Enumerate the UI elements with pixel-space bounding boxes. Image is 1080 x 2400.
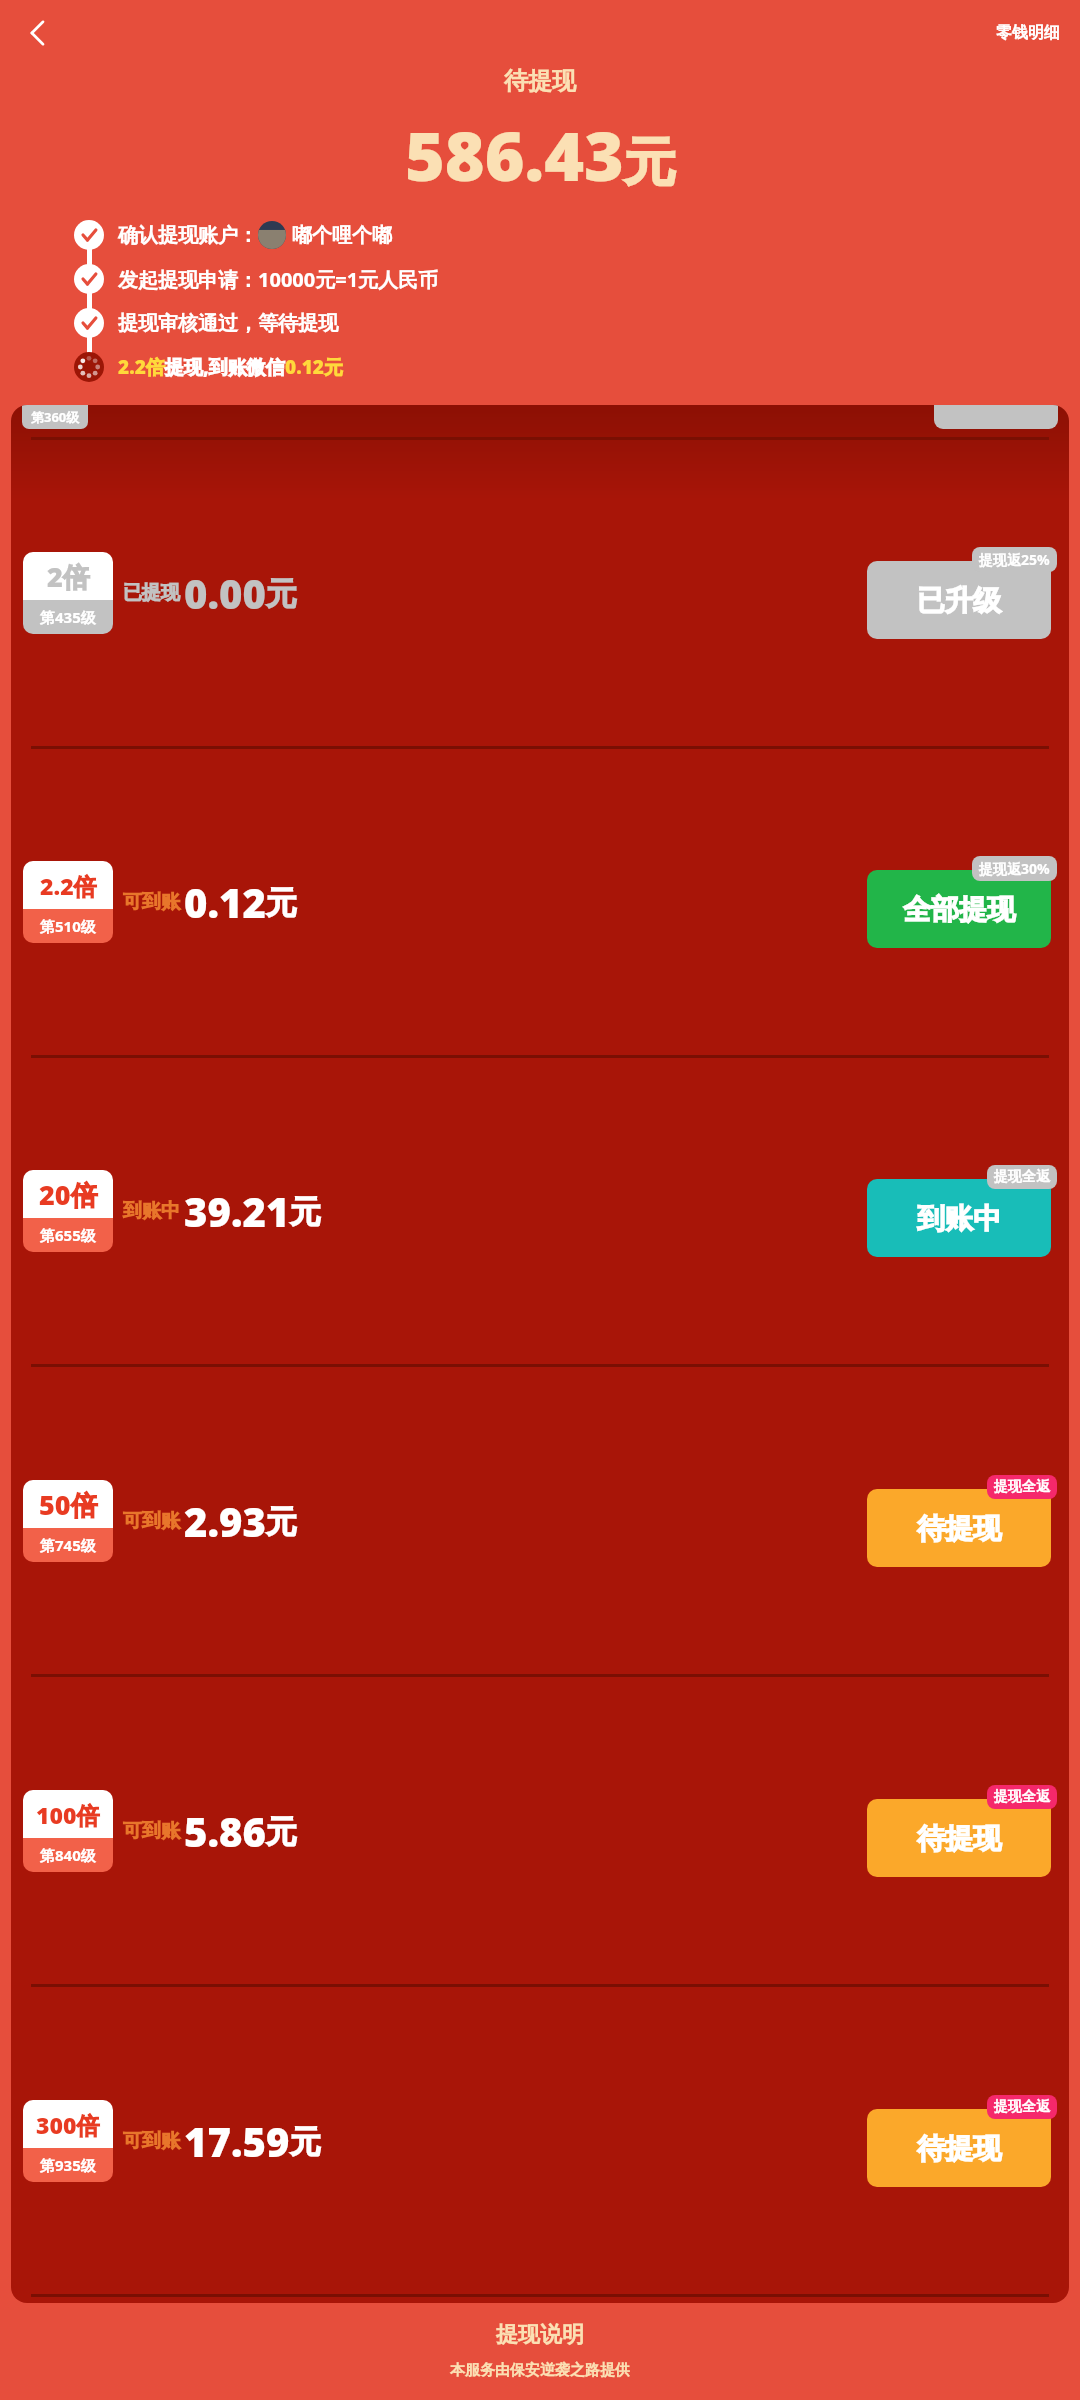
staticText: 100倍 (36, 1799, 100, 1830)
button[interactable]: 零钱明细 (984, 15, 1072, 51)
staticText: 元 (266, 883, 297, 922)
staticText: 提现全返 (994, 2098, 1050, 2116)
button[interactable]: 100倍 (11, 1677, 1069, 1984)
staticText: 元 (290, 1192, 321, 1231)
button[interactable]: 2.2倍 (11, 749, 1069, 1055)
staticText: 2.93 (184, 1494, 266, 1548)
staticText: 待提现 (504, 66, 576, 96)
staticText: 全部提现 (903, 892, 1015, 927)
staticText: 第840级 (40, 1845, 96, 1865)
button[interactable]: 已升级 (867, 561, 1051, 639)
staticText: 元 (290, 2122, 321, 2161)
staticText: 到账中 (123, 1199, 180, 1223)
button[interactable]: Back (12, 7, 64, 59)
staticText: 0.12 (184, 875, 266, 929)
staticText: 第935级 (40, 2155, 96, 2175)
staticText: 已升级 (917, 583, 1001, 618)
staticText: 发起提现申请：10000元=1元人民币 (118, 266, 439, 293)
staticText: 可到账 (123, 1509, 180, 1533)
button[interactable]: 20倍 (11, 1058, 1069, 1364)
staticText: 可到账 (123, 1819, 180, 1843)
staticText: 元 (266, 1812, 297, 1851)
staticText: 提现全返 (994, 1788, 1050, 1806)
staticText: 已提现 (123, 581, 180, 605)
button[interactable]: 待提现 (867, 2109, 1051, 2187)
button[interactable]: 全部提现 (867, 870, 1051, 948)
staticText: 2.2倍 (40, 870, 97, 901)
button[interactable]: 2倍 (11, 440, 1069, 746)
staticText: 0.00 (184, 566, 266, 620)
staticText: 50倍 (39, 1486, 98, 1523)
staticText: 第745级 (40, 1535, 96, 1555)
staticText: 元 (266, 574, 297, 613)
staticText: 待提现 (917, 1511, 1001, 1546)
staticText: 确认提现账户： (118, 223, 258, 248)
staticText: 提现说明 (496, 2321, 584, 2349)
staticText: 39.21 (184, 1184, 290, 1238)
staticText: 到账中 (917, 1201, 1001, 1236)
staticText: 提现返25% (979, 550, 1050, 569)
staticText: 第360级 (31, 408, 80, 426)
staticText: 2倍 (47, 558, 90, 595)
staticText: 0.12元 (285, 354, 343, 380)
staticText: 300倍 (36, 2109, 100, 2140)
staticText: 第655级 (40, 1225, 96, 1245)
staticText: 20倍 (39, 1176, 98, 1213)
button[interactable]: 待提现 (867, 1489, 1051, 1567)
button[interactable]: 到账中 (867, 1179, 1051, 1257)
staticText: 元 (624, 130, 676, 196)
staticText: 待提现 (917, 2131, 1001, 2166)
staticText: 嘟个哩个嘟 (292, 223, 392, 248)
staticText: 零钱明细 (996, 23, 1060, 43)
staticText: 17.59 (184, 2114, 290, 2168)
staticText: 提现全返 (994, 1478, 1050, 1496)
staticText: 可到账 (123, 2129, 180, 2153)
staticText: 本服务由保安逆袭之路提供 (450, 2361, 630, 2380)
staticText: 2.2倍 (118, 354, 165, 380)
button[interactable]: 50倍 (11, 1367, 1069, 1674)
staticText: 提现全返 (994, 1168, 1050, 1186)
staticText: 待提现 (917, 1821, 1001, 1856)
staticText: 可到账 (123, 890, 180, 914)
staticText: 提现审核通过，等待提现 (118, 311, 338, 336)
staticText: 提现,到账微信 (165, 354, 285, 380)
staticText: 提现返30% (979, 859, 1050, 878)
button[interactable]: 提现说明 (484, 2319, 596, 2351)
staticText: 586.43 (405, 108, 624, 201)
staticText: 第510级 (40, 916, 96, 936)
button[interactable]: 待提现 (867, 1799, 1051, 1877)
staticText: 第435级 (40, 607, 96, 627)
staticText: 5.86 (184, 1804, 266, 1858)
button[interactable]: 300倍 (11, 1987, 1069, 2294)
staticText: 元 (266, 1502, 297, 1541)
